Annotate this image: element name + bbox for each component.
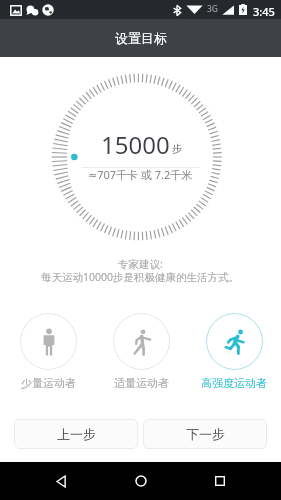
- staticText: 设置目标: [115, 30, 167, 46]
- staticText: 15000: [101, 128, 170, 161]
- staticText: 3:45: [253, 4, 275, 19]
- staticText: 步: [172, 142, 182, 155]
- staticText: 少量运动者: [21, 376, 76, 390]
- staticText: 下一步: [186, 426, 225, 442]
- staticText: 专家建议:: [118, 257, 163, 271]
- staticText: 适量运动者: [114, 376, 169, 390]
- staticText: 3G: [207, 3, 219, 15]
- button[interactable]: 高强度运动者: [189, 313, 279, 390]
- button[interactable]: Home: [122, 462, 160, 500]
- staticText: 上一步: [57, 426, 96, 442]
- button[interactable]: Recents: [201, 462, 239, 500]
- staticText: 每天运动10000步是积极健康的生活方式。: [41, 270, 240, 284]
- staticText: ≈707千卡 或 7.2千米: [88, 167, 193, 182]
- staticText: 高强度运动者: [201, 376, 267, 390]
- button[interactable]: 适量运动者: [96, 313, 186, 390]
- button[interactable]: Back: [42, 462, 80, 500]
- button[interactable]: 少量运动者: [3, 313, 93, 390]
- button[interactable]: 上一步: [14, 419, 138, 449]
- button[interactable]: 下一步: [143, 419, 267, 449]
